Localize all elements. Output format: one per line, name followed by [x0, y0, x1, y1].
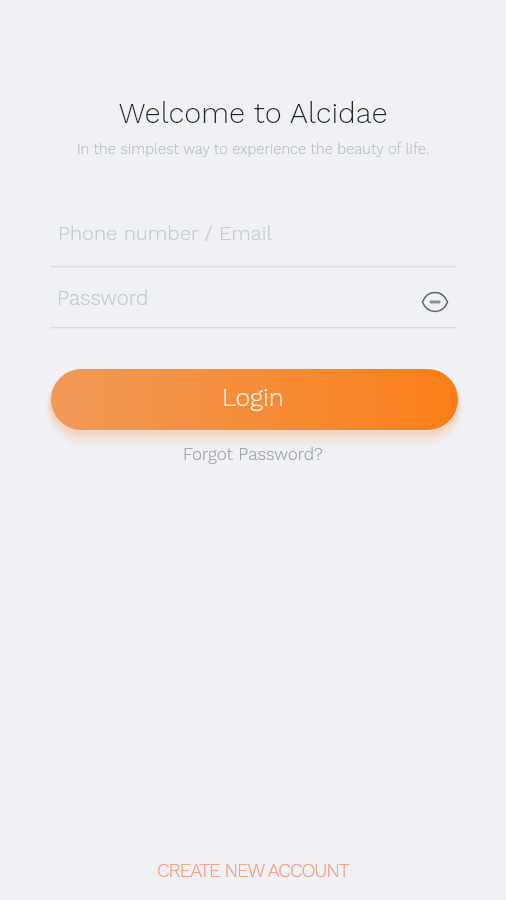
staticText: Login — [222, 383, 284, 412]
button[interactable]: Forgot Password? — [173, 441, 333, 467]
staticText: Welcome to Alcidae — [0, 96, 506, 130]
button[interactable]: Password — [57, 286, 357, 310]
staticText: CREATE NEW ACCOUNT — [157, 859, 349, 881]
staticText: In the simplest way to experience the be… — [0, 140, 506, 157]
button[interactable]: Login — [51, 369, 458, 430]
button[interactable]: Phone number / Email — [58, 221, 358, 245]
staticText: Forgot Password? — [183, 444, 323, 464]
button[interactable]: Show password — [418, 285, 452, 318]
button[interactable]: CREATE NEW ACCOUNT — [0, 839, 506, 900]
